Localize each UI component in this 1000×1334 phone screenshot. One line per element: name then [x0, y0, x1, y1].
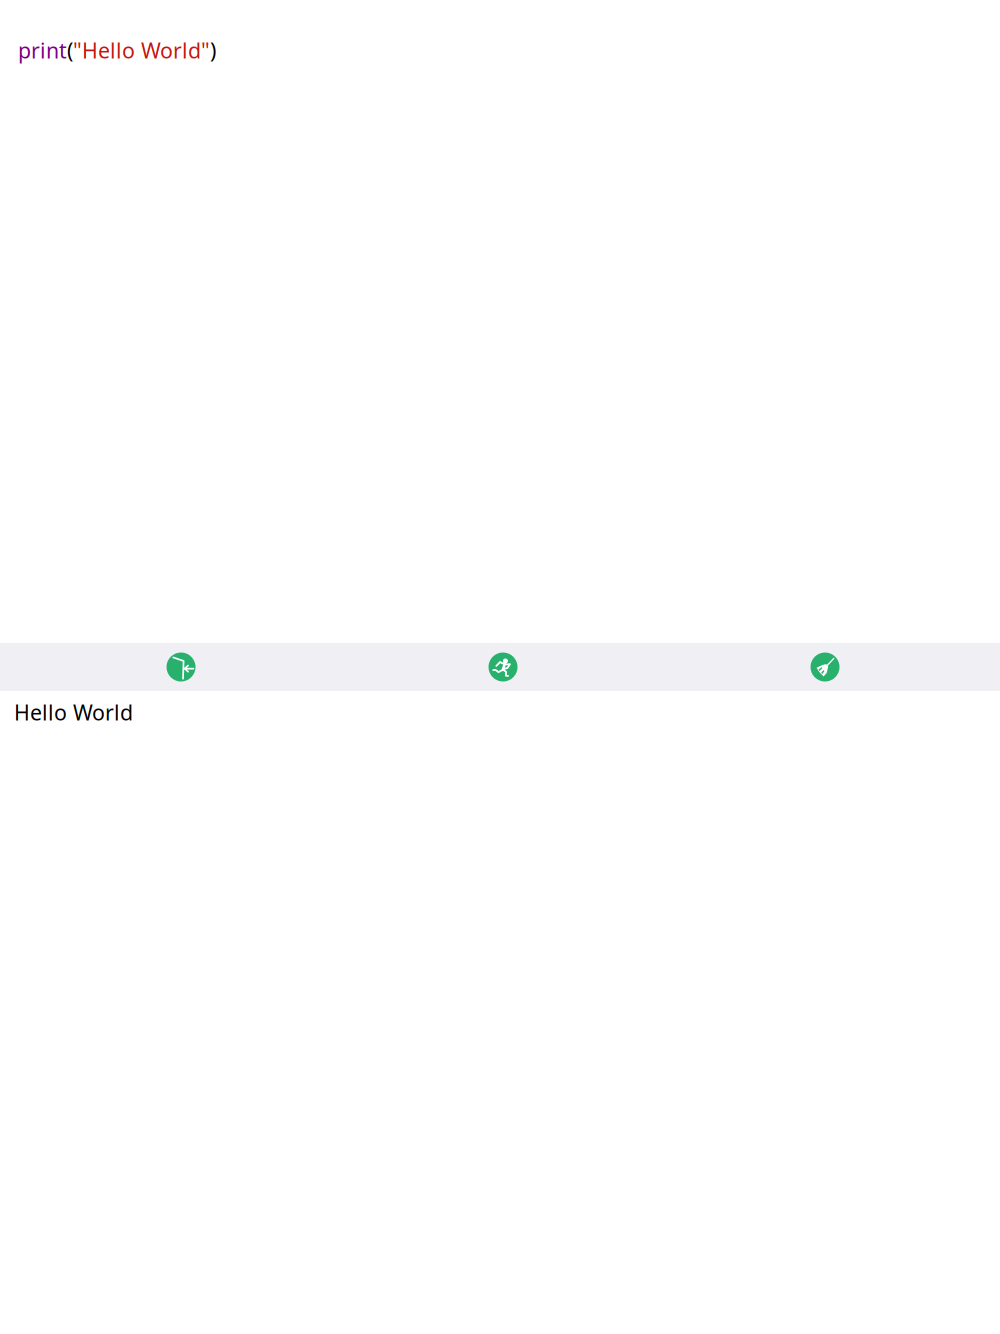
- staticText: print: [18, 36, 67, 64]
- button[interactable]: Load example: [20, 643, 342, 691]
- staticText: "Hello World": [73, 36, 210, 64]
- button[interactable]: Clear output: [664, 643, 986, 691]
- button[interactable]: Run: [342, 643, 664, 691]
- staticText: Hello World: [14, 698, 133, 726]
- staticText: (: [67, 36, 73, 64]
- staticText: ): [210, 36, 216, 64]
